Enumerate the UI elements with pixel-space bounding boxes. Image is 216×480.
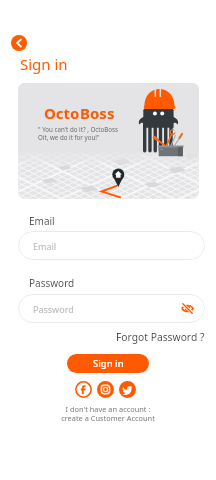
staticText: Sign in: [20, 54, 68, 74]
button[interactable]: Email: [18, 231, 205, 260]
button[interactable]: Show password: [181, 302, 194, 315]
button[interactable]: Instagram: [97, 381, 114, 398]
button[interactable]: Back: [11, 35, 27, 51]
staticText: Password: [33, 303, 74, 315]
staticText: " You can't do it? , OctoBoss: [38, 125, 118, 133]
staticText: Email: [33, 240, 57, 252]
button[interactable]: I don't have an account : create a Custo…: [0, 404, 216, 423]
button[interactable]: Password: [18, 294, 205, 323]
button[interactable]: Twitter: [119, 381, 136, 398]
staticText: Sign in: [93, 357, 124, 370]
button[interactable]: Facebook: [75, 381, 92, 398]
staticText: Email: [29, 214, 55, 228]
button[interactable]: Sign in: [67, 354, 149, 373]
staticText: Password: [29, 276, 75, 290]
staticText: Octo: [44, 103, 80, 123]
staticText: Oit, we do it for you!": [38, 133, 100, 141]
button[interactable]: Forgot Password ?: [116, 330, 205, 344]
staticText: Boss: [80, 103, 115, 123]
